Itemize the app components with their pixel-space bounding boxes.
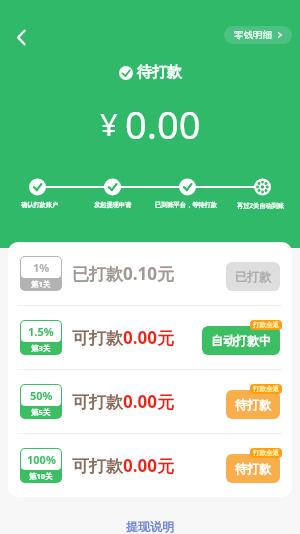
staticText: 已到账平台，等待打款	[155, 201, 217, 209]
button[interactable]: 待打款	[226, 454, 280, 483]
staticText: 发起提现申请	[94, 201, 132, 209]
staticText: 确认打款账户	[21, 201, 59, 209]
staticText: 100%	[27, 452, 56, 467]
staticText: 已打款	[235, 269, 271, 284]
staticText: ¥	[100, 103, 118, 145]
staticText: 打款全返	[253, 385, 279, 393]
button[interactable]: 自动打款中	[202, 326, 280, 355]
staticText: 1%	[33, 260, 50, 275]
staticText: 打款全返	[253, 321, 279, 329]
button[interactable]: 1%	[8, 242, 292, 305]
staticText: 可打款0.00元	[72, 454, 226, 477]
staticText: 0.00	[125, 98, 201, 150]
button[interactable]: 待打款	[226, 390, 280, 419]
staticText: 待打款	[137, 63, 182, 82]
staticText: 50%	[30, 388, 53, 403]
staticText: 可打款0.00元	[72, 390, 226, 413]
staticText: 可打款0.00元	[72, 326, 202, 349]
staticText: 再过2关自动到账	[237, 201, 284, 209]
button[interactable]: 100%	[8, 434, 292, 497]
staticText: 待打款	[235, 461, 271, 476]
staticText: 提现说明	[126, 519, 174, 534]
button[interactable]: Back	[5, 21, 37, 53]
button[interactable]: 零钱明细	[224, 26, 292, 44]
button[interactable]: 已打款	[226, 262, 280, 291]
staticText: 零钱明细	[234, 29, 272, 41]
staticText: 1.5%	[28, 324, 54, 339]
staticText: 自动打款中	[211, 333, 271, 348]
staticText: 打款全返	[253, 449, 279, 457]
button[interactable]: 50%	[8, 370, 292, 433]
staticText: 第3关	[31, 343, 51, 353]
staticText: 第1关	[31, 279, 51, 289]
button[interactable]: 提现说明	[0, 519, 300, 534]
staticText: 第5关	[31, 407, 51, 417]
staticText: 已打款0.10元	[72, 262, 226, 285]
staticText: 待打款	[235, 397, 271, 412]
button[interactable]: 1.5%	[8, 306, 292, 369]
staticText: 第10关	[29, 471, 53, 481]
